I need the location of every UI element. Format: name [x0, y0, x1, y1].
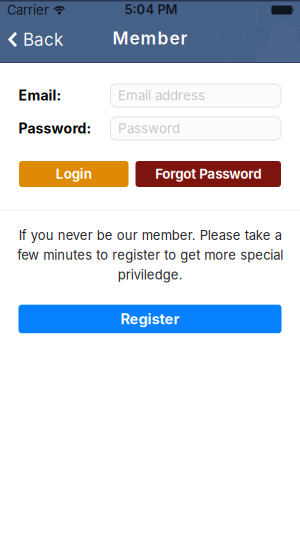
staticText: Carrier — [7, 2, 49, 18]
staticText: Member — [112, 28, 187, 49]
staticText: Password: — [18, 120, 91, 137]
button[interactable]: Login — [19, 161, 128, 187]
button[interactable]: Email address — [110, 83, 281, 107]
staticText: Register — [120, 310, 179, 328]
button[interactable]: Register — [18, 305, 281, 333]
button[interactable]: Password — [110, 116, 281, 140]
staticText: If you never be our member. Please take … — [17, 227, 283, 283]
staticText: 5:04 PM — [124, 2, 177, 17]
button[interactable]: Forgot Password — [135, 161, 281, 187]
staticText: Forgot Password — [155, 166, 261, 182]
staticText: Back — [23, 29, 63, 50]
staticText: Password — [118, 120, 180, 136]
staticText: Email address — [118, 87, 205, 103]
staticText: Login — [56, 166, 92, 182]
staticText: Email: — [18, 87, 61, 104]
button[interactable]: Back — [8, 29, 63, 50]
